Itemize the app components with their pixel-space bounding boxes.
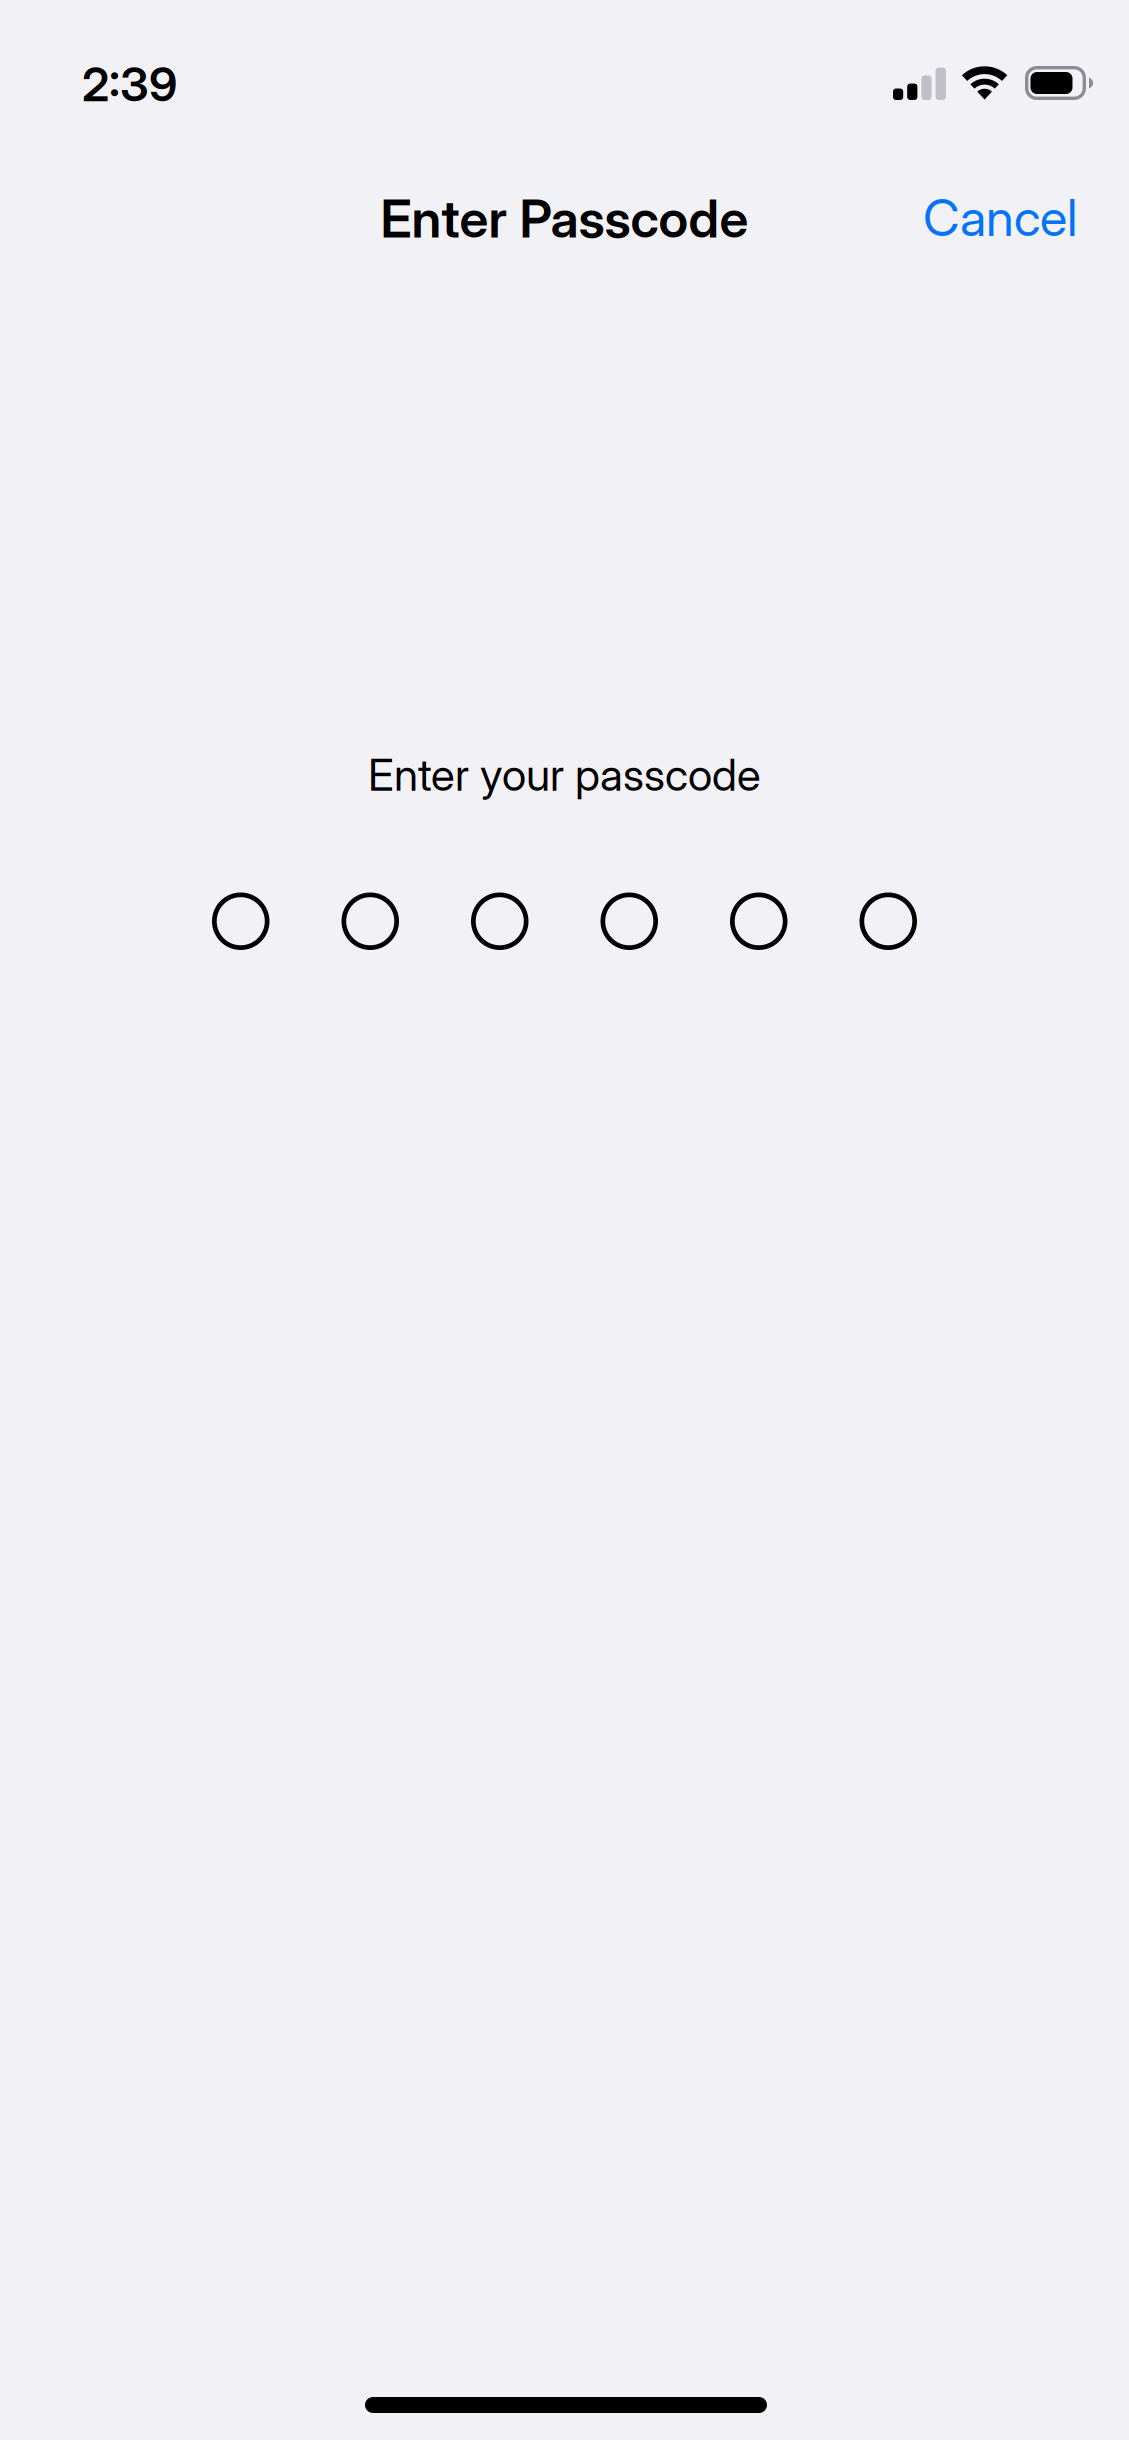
button[interactable]: Cancel bbox=[907, 173, 1093, 262]
staticText: Enter Passcode bbox=[380, 187, 748, 250]
button[interactable]: Passcode field, empty bbox=[0, 748, 1129, 950]
staticText: Cancel bbox=[923, 187, 1077, 248]
staticText: Enter your passcode bbox=[368, 748, 761, 801]
staticText: 2:39 bbox=[82, 56, 177, 112]
